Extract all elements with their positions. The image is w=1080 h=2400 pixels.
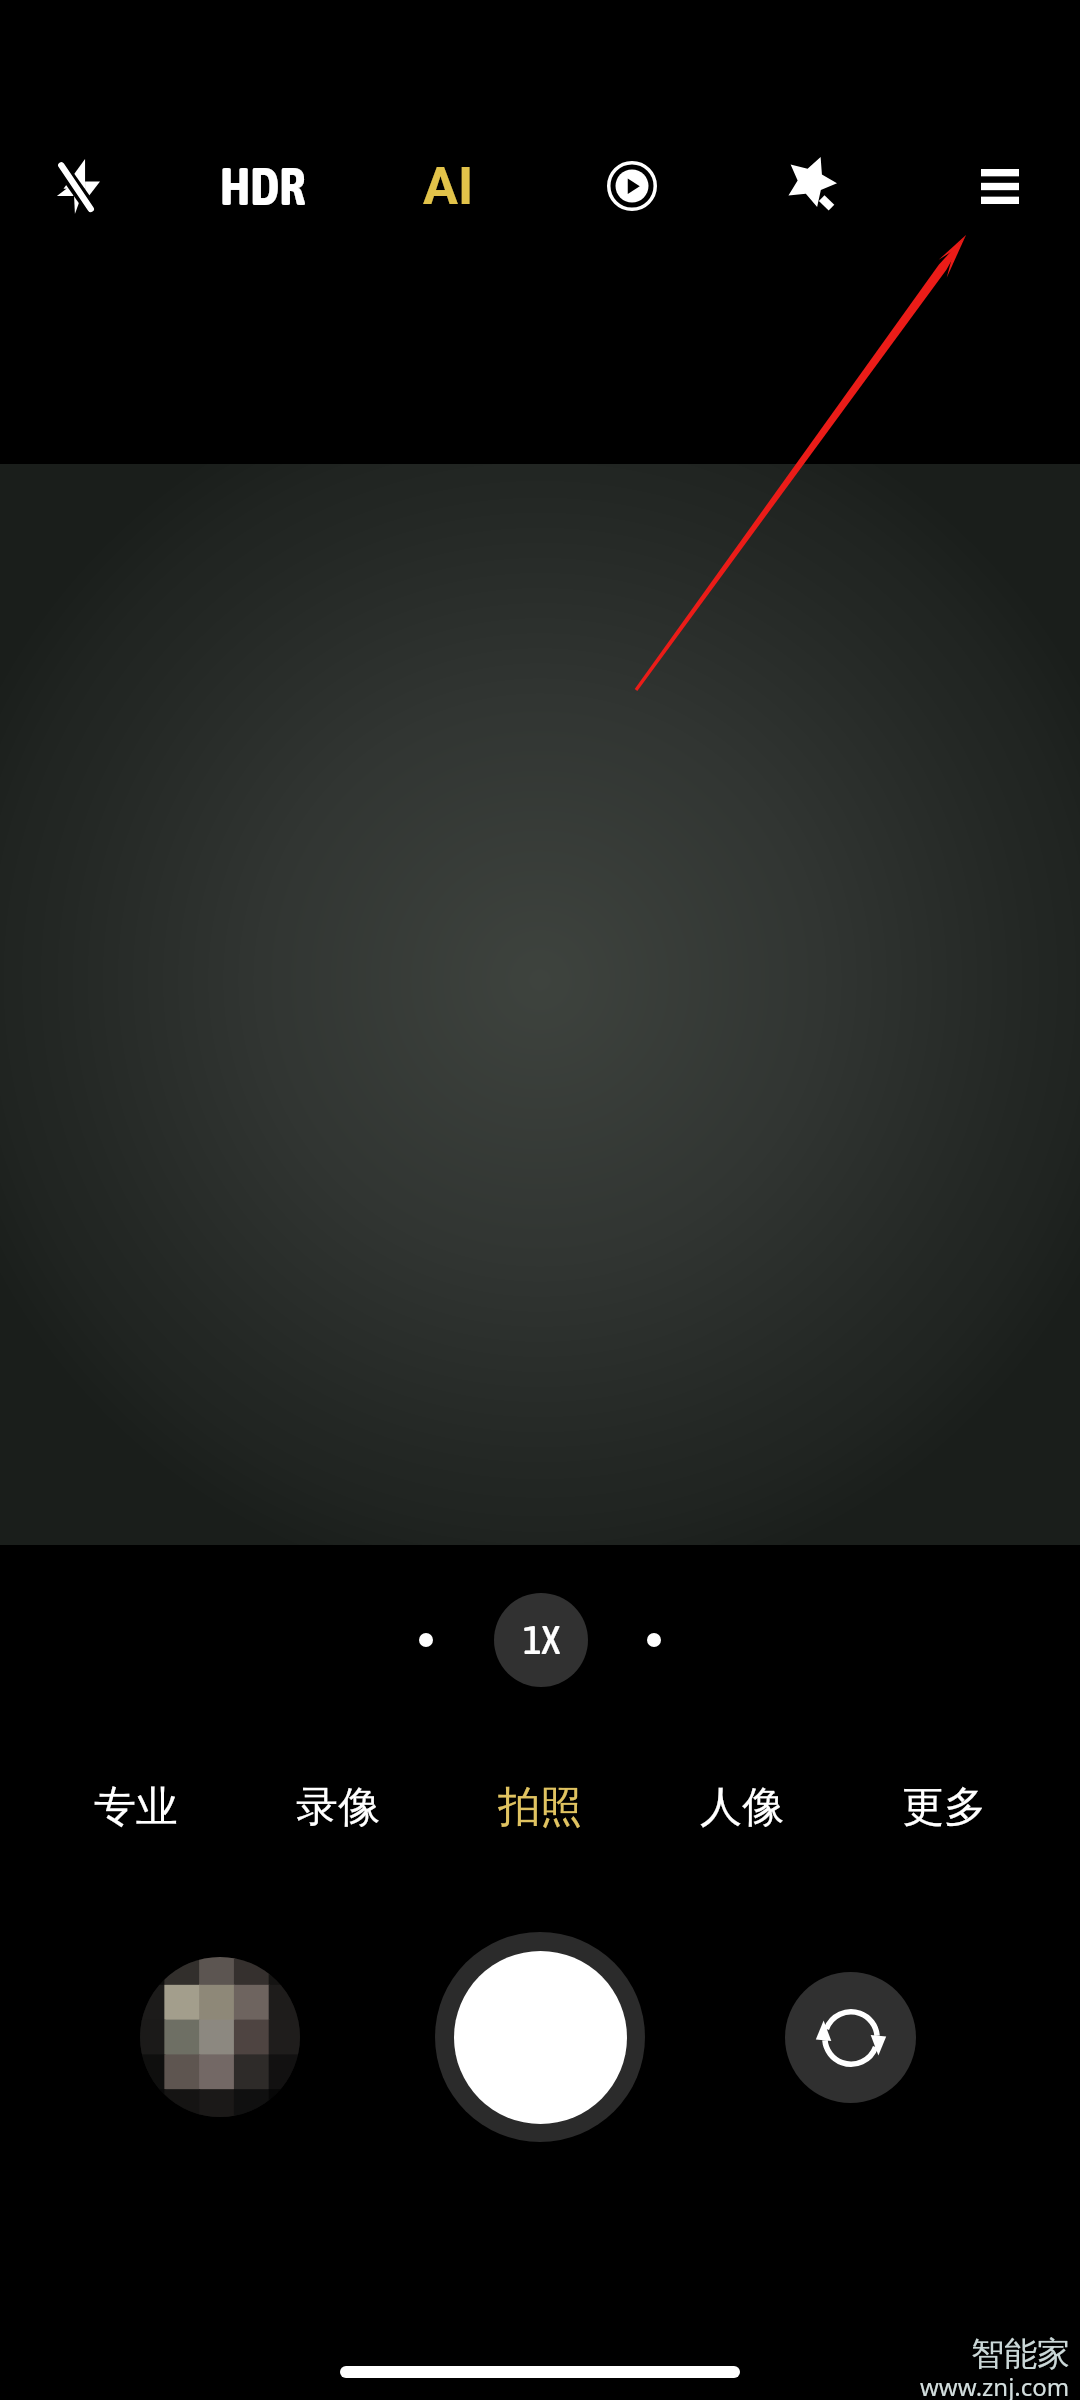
staticText: 人像 bbox=[700, 1781, 784, 1834]
button[interactable]: Zoom in bbox=[624, 1610, 684, 1670]
button[interactable]: 1X bbox=[494, 1593, 588, 1687]
button[interactable]: Take photo bbox=[435, 1932, 645, 2142]
button[interactable]: 拍照 bbox=[439, 1759, 641, 1855]
staticText: 智能家 bbox=[971, 2333, 1070, 2375]
staticText: AI bbox=[423, 156, 474, 217]
button[interactable]: 更多 bbox=[843, 1759, 1045, 1855]
staticText: 更多 bbox=[902, 1781, 986, 1834]
button[interactable]: Gallery bbox=[140, 1957, 300, 2117]
button[interactable]: Settings menu bbox=[956, 142, 1044, 230]
button[interactable]: AI bbox=[400, 142, 496, 230]
staticText: 1X bbox=[523, 1617, 560, 1663]
button[interactable]: Beauty filter bbox=[769, 142, 857, 230]
button[interactable]: 录像 bbox=[237, 1759, 439, 1855]
button[interactable]: 专业 bbox=[35, 1759, 237, 1855]
button[interactable]: Motion photo bbox=[588, 142, 676, 230]
staticText: HDR bbox=[220, 156, 306, 216]
staticText: 专业 bbox=[94, 1781, 178, 1834]
staticText: 录像 bbox=[296, 1781, 380, 1834]
button[interactable]: Flash off bbox=[34, 142, 122, 230]
button[interactable]: 人像 bbox=[641, 1759, 843, 1855]
button[interactable]: HDR bbox=[203, 142, 323, 230]
button[interactable]: Zoom out bbox=[396, 1610, 456, 1670]
staticText: www.znj.com bbox=[920, 2370, 1070, 2400]
button[interactable]: Switch camera bbox=[785, 1972, 916, 2103]
staticText: 拍照 bbox=[498, 1781, 582, 1834]
